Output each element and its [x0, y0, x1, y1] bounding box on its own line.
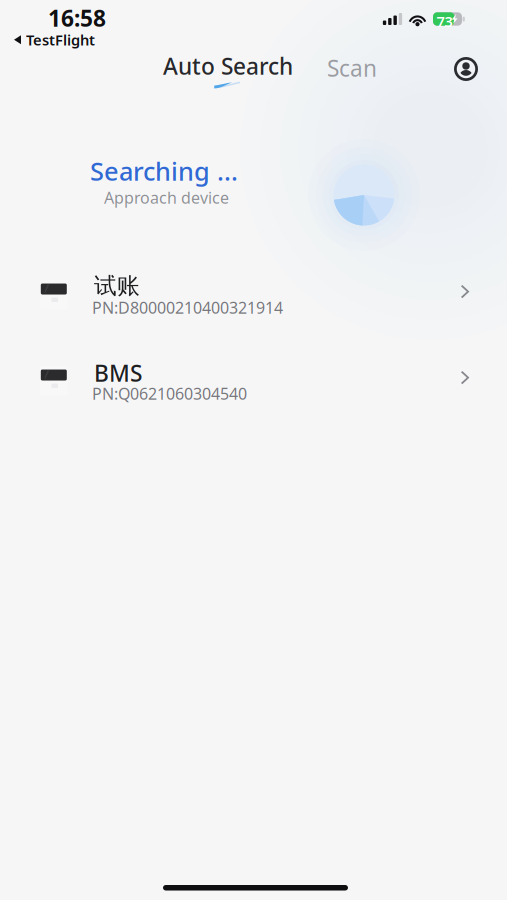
staticText: PN:Q0621060304540 [92, 383, 247, 404]
staticText: Scan [327, 53, 377, 83]
staticText: TestFlight [26, 30, 95, 49]
staticText: Auto Search [163, 51, 293, 81]
button[interactable]: BMS [0, 344, 507, 410]
staticText: 73 [436, 12, 452, 31]
button[interactable]: Auto Search [155, 47, 301, 89]
staticText: BMS [94, 358, 142, 388]
staticText: 16:58 [48, 3, 106, 33]
button[interactable]: Account [446, 49, 486, 89]
staticText: Searching ... [90, 154, 238, 188]
button[interactable]: Scan [318, 47, 386, 89]
button[interactable]: 试账 [0, 258, 507, 324]
staticText: Approach device [104, 187, 229, 208]
staticText: PN:D80000210400321914 [92, 297, 283, 318]
staticText: 试账 [94, 272, 140, 300]
